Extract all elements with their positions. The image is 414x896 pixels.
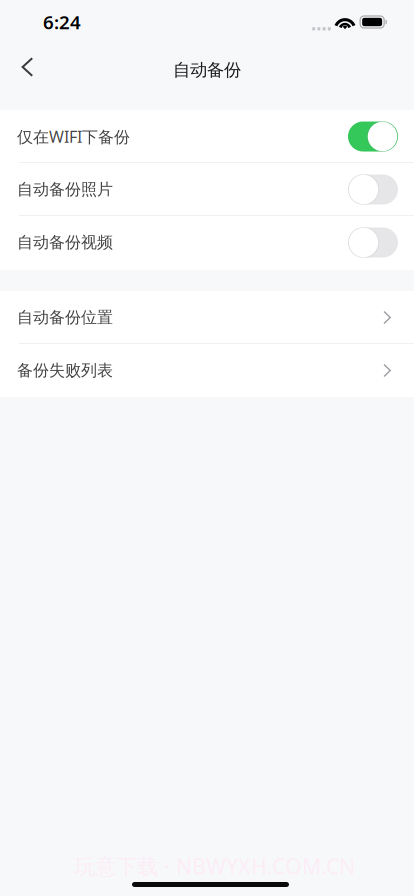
staticText: 备份失败列表	[17, 361, 113, 380]
button[interactable]: Back	[0, 51, 50, 89]
staticText: 自动备份照片	[17, 180, 113, 199]
button[interactable]: 自动备份位置	[0, 291, 414, 344]
button[interactable]: 自动备份照片	[0, 163, 414, 216]
button[interactable]: 备份失败列表	[0, 344, 414, 397]
button[interactable]: 仅在WIFI下备份	[0, 110, 414, 163]
staticText: 仅在WIFI下备份	[17, 126, 130, 147]
staticText: 6:24	[43, 10, 81, 34]
button[interactable]: 自动备份视频	[0, 216, 414, 269]
staticText: 自动备份	[173, 59, 241, 81]
staticText: 自动备份视频	[17, 233, 113, 252]
staticText: 玩意下载 · NBWYXH.COM.CN	[74, 852, 355, 880]
staticText: 自动备份位置	[17, 308, 113, 327]
